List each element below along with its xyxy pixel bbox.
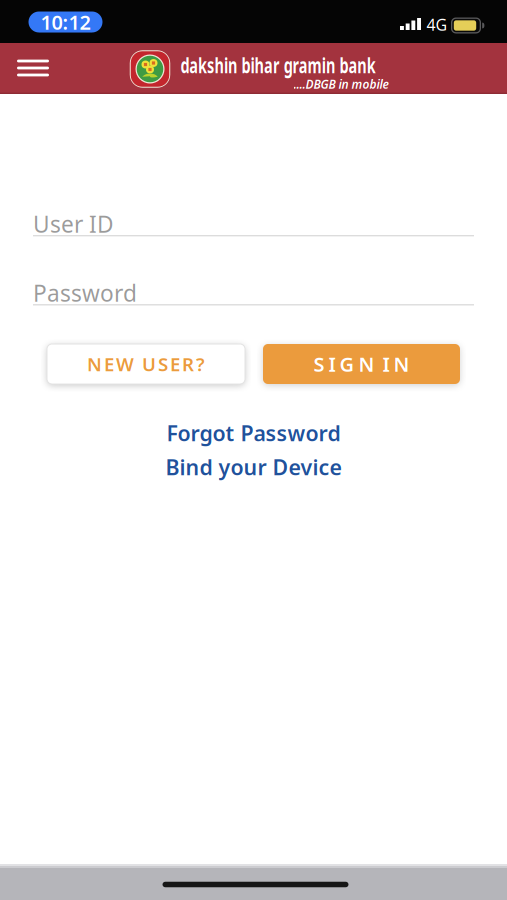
staticText: User ID <box>33 209 114 239</box>
staticText: dakshin bihar gramin bank <box>134 51 421 79</box>
staticText: 10:12 <box>40 9 90 35</box>
button[interactable]: Bind your Device <box>165 453 341 481</box>
staticText: ....DBGB in mobile <box>293 76 388 92</box>
button[interactable]: S I G N I N <box>263 344 460 384</box>
button[interactable]: Forgot Password <box>166 419 340 447</box>
staticText: N E W U S E R ? <box>87 352 205 376</box>
staticText: Password <box>33 278 137 308</box>
staticText: Forgot Password <box>166 419 340 447</box>
button[interactable]: Menu <box>11 50 55 86</box>
staticText: 4G <box>426 14 447 35</box>
button[interactable]: User ID <box>33 200 474 240</box>
staticText: S I G N I N <box>313 351 409 377</box>
staticText: Bind your Device <box>165 453 341 481</box>
button[interactable]: N E W U S E R ? <box>47 344 245 384</box>
button[interactable]: Password <box>33 269 474 309</box>
